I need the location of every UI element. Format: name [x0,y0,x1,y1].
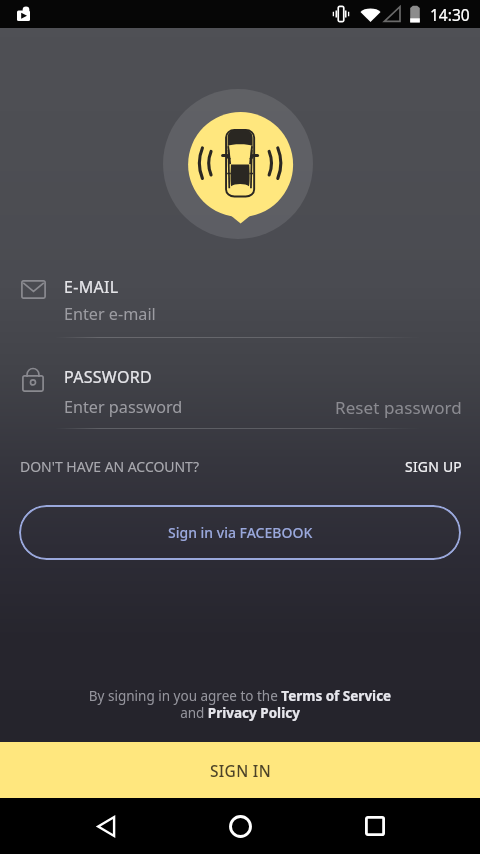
staticText: Enter e-mail [64,303,156,325]
staticText: Reset password [335,396,462,419]
button[interactable]: Reset password [335,396,462,419]
staticText: 14:30 [430,4,470,25]
staticText: Enter password [64,396,183,418]
other: Email [21,280,46,299]
staticText: SIGN IN [210,760,271,781]
button[interactable]: DON'T HAVE AN ACCOUNT? [20,457,200,476]
staticText: Sign in via FACEBOOK [168,523,313,542]
staticText: By signing in you agree to the Terms of … [88,687,392,722]
other: Password [22,368,44,392]
staticText: DON'T HAVE AN ACCOUNT? [20,457,200,476]
staticText: PASSWORD [64,366,152,388]
button[interactable]: Sign in via FACEBOOK [19,505,461,560]
button[interactable]: Back [76,798,136,854]
button[interactable]: SIGN IN [0,742,480,798]
button[interactable]: Recent apps [345,798,405,854]
button[interactable]: SIGN UP [405,457,463,476]
staticText: E-MAIL [64,276,119,298]
button[interactable]: Home [210,798,270,854]
staticText: SIGN UP [405,457,463,476]
